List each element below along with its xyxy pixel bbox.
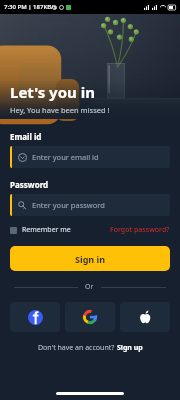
staticText: 7:30 PM | 187KB/s: [4, 3, 57, 11]
staticText: Enter your password: [32, 200, 105, 210]
staticText: Sign up: [117, 343, 143, 353]
button[interactable]: Remember me: [10, 225, 71, 235]
staticText: Let's you in: [10, 82, 95, 102]
staticText: Email id: [10, 131, 42, 142]
button[interactable]: Sign in with Google: [65, 302, 115, 332]
button[interactable]: Enter your email id: [10, 146, 170, 168]
button[interactable]: Enter your password: [10, 194, 170, 216]
staticText: Don't have an account?: [38, 343, 117, 353]
button[interactable]: Sign in: [10, 246, 170, 271]
button[interactable]: Sign up: [117, 343, 143, 353]
staticText: Password: [10, 179, 49, 190]
button[interactable]: Sign in with Apple: [120, 302, 170, 332]
staticText: Enter your email id: [32, 152, 99, 162]
staticText: Hey, You have been missed !: [10, 105, 110, 115]
button[interactable]: Forgot password?: [110, 225, 170, 235]
staticText: Or: [85, 282, 94, 292]
button[interactable]: Sign in with Facebook: [10, 302, 60, 332]
staticText: Sign in: [75, 253, 106, 265]
staticText: Forgot password?: [110, 225, 170, 235]
staticText: Remember me: [22, 225, 71, 235]
